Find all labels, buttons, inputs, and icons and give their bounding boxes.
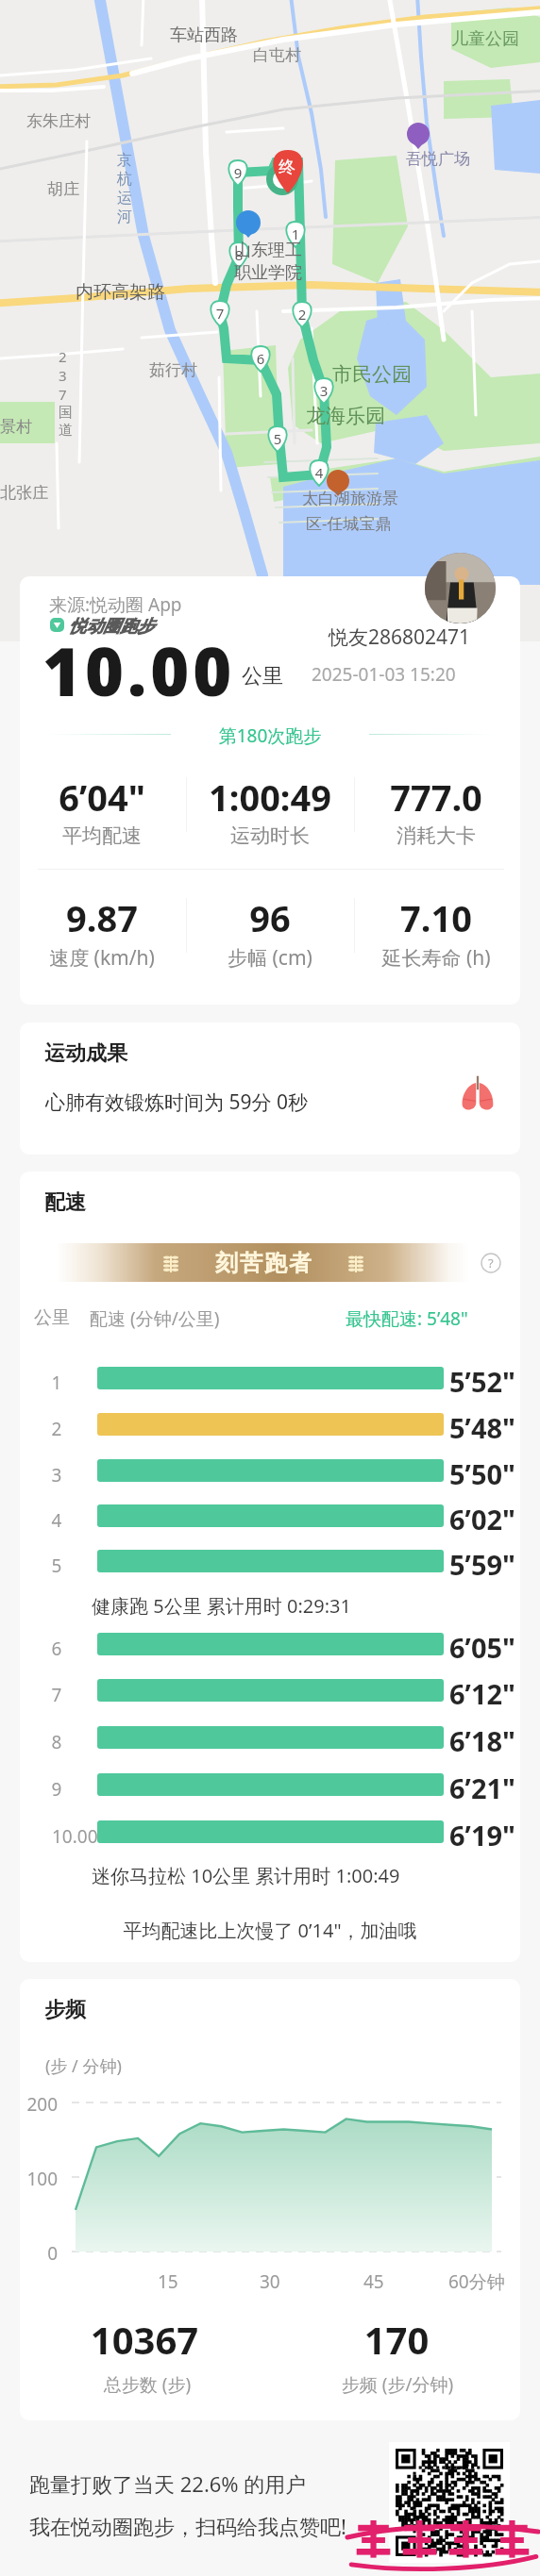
staticText: 公里 bbox=[34, 1306, 70, 1329]
staticText: 京 bbox=[117, 151, 132, 170]
staticText: 东朱庄村 bbox=[26, 111, 91, 131]
staticText: 运动时长 bbox=[166, 823, 374, 848]
staticText: 龙海乐园 bbox=[306, 404, 385, 428]
staticText: 步幅 (cm) bbox=[166, 944, 374, 972]
staticText: 6’18" bbox=[449, 1722, 515, 1759]
staticText: 777.0 bbox=[332, 773, 520, 822]
staticText: 河 bbox=[117, 208, 132, 226]
staticText: 太白湖旅游景 bbox=[302, 489, 398, 508]
staticText: 跑量打败了当天 22.6% 的用户 bbox=[29, 2469, 307, 2498]
staticText: (步 / 分钟) bbox=[45, 2054, 122, 2078]
staticText: 山东理工 bbox=[234, 240, 302, 261]
staticText: 吾悦广场 bbox=[406, 149, 470, 169]
staticText: 延长寿命 (h) bbox=[332, 944, 520, 972]
staticText: 45 bbox=[363, 2269, 384, 2294]
staticText: 7.10 bbox=[332, 893, 520, 942]
staticText: 终 bbox=[274, 157, 300, 178]
staticText: 运动成果 bbox=[44, 1040, 127, 1067]
staticText: 道 bbox=[59, 422, 73, 440]
staticText: 运 bbox=[117, 189, 132, 208]
staticText: 2025-01-03 15:20 bbox=[312, 662, 456, 687]
staticText: 杭 bbox=[117, 170, 132, 189]
staticText: 6’05" bbox=[449, 1629, 515, 1666]
staticText: 刻苦跑者 bbox=[214, 1249, 312, 1277]
staticText: 总步数 (步) bbox=[25, 2372, 270, 2397]
staticText: 5’50" bbox=[449, 1455, 515, 1492]
button[interactable]: User avatar bbox=[425, 553, 496, 623]
staticText: 3 bbox=[312, 381, 335, 400]
staticText: 6 bbox=[28, 1637, 85, 1661]
staticText: 2 bbox=[291, 305, 313, 324]
staticText: 消耗大卡 bbox=[332, 823, 520, 848]
staticText: 儿童公园 bbox=[451, 28, 519, 50]
staticText: 国 bbox=[59, 404, 73, 422]
staticText: 5 bbox=[28, 1554, 85, 1578]
staticText: 3 bbox=[59, 366, 67, 385]
staticText: 迷你马拉松 10公里 累计用时 1:00:49 bbox=[92, 1863, 400, 1888]
staticText: 职业学院 bbox=[234, 262, 302, 284]
staticText: 5’48" bbox=[449, 1409, 515, 1446]
staticText: 15 bbox=[158, 2269, 178, 2294]
staticText: 8 bbox=[28, 1730, 85, 1754]
staticText: 茹行村 bbox=[149, 360, 197, 380]
staticText: 6’04" bbox=[20, 773, 206, 822]
staticText: 6’21" bbox=[449, 1770, 515, 1806]
staticText: 区-任城宝鼎 bbox=[306, 512, 392, 534]
staticText: 9.87 bbox=[20, 893, 206, 942]
staticText: 10.00 bbox=[42, 625, 236, 715]
staticText: ? bbox=[488, 1255, 494, 1271]
staticText: 来源:悦动圈 App bbox=[49, 592, 182, 617]
staticText: 平均配速比上次慢了 0’14"，加油哦 bbox=[53, 1918, 487, 1943]
staticText: 公里 bbox=[242, 663, 283, 690]
staticText: 平均配速 bbox=[20, 823, 206, 848]
staticText: 60分钟 bbox=[448, 2269, 505, 2294]
staticText: 步频 bbox=[44, 1997, 86, 2023]
staticText: 5 bbox=[266, 429, 289, 448]
staticText: 3 bbox=[28, 1463, 85, 1487]
staticText: 9 bbox=[227, 163, 249, 182]
staticText: 步频 (步/分钟) bbox=[275, 2372, 520, 2397]
staticText: 6’02" bbox=[449, 1501, 515, 1537]
staticText: 7 bbox=[209, 304, 231, 323]
staticText: 7 bbox=[28, 1683, 85, 1707]
staticText: 配速 bbox=[44, 1189, 86, 1216]
staticText: 最快配速: 5’48" bbox=[346, 1306, 468, 1331]
staticText: 车站西路 bbox=[170, 25, 238, 46]
staticText: 市民公园 bbox=[332, 362, 412, 387]
staticText: 内环高架路 bbox=[76, 281, 165, 304]
staticText: 景村 bbox=[0, 417, 32, 437]
staticText: 1 bbox=[284, 224, 307, 243]
staticText: 1:00:49 bbox=[166, 773, 374, 822]
staticText: 0 bbox=[20, 2241, 58, 2266]
staticText: 10.00 bbox=[52, 1824, 98, 1849]
staticText: 胡庄 bbox=[47, 179, 79, 199]
staticText: 10367 bbox=[22, 2314, 267, 2365]
staticText: 9 bbox=[28, 1777, 85, 1802]
staticText: 4 bbox=[28, 1508, 85, 1533]
staticText: 5’52" bbox=[449, 1363, 515, 1400]
staticText: 6’19" bbox=[449, 1817, 515, 1853]
staticText: 白屯村 bbox=[253, 45, 301, 65]
staticText: 悦动圈跑步 bbox=[69, 616, 154, 638]
staticText: 第180次跑步 bbox=[166, 723, 374, 748]
staticText: 170 bbox=[274, 2314, 519, 2365]
staticText: 2 bbox=[28, 1417, 85, 1441]
staticText: 北张庄 bbox=[0, 483, 48, 503]
staticText: 96 bbox=[166, 893, 374, 942]
staticText: 100 bbox=[20, 2167, 58, 2191]
staticText: 1 bbox=[28, 1371, 85, 1395]
staticText: 悦友286802471 bbox=[329, 623, 471, 651]
staticText: 我在悦动圈跑步，扫码给我点赞吧! bbox=[29, 2512, 346, 2540]
staticText: 速度 (km/h) bbox=[20, 944, 206, 972]
staticText: 心肺有效锻炼时间为 59分 0秒 bbox=[45, 1089, 308, 1116]
staticText: 2 bbox=[59, 347, 67, 366]
staticText: 6 bbox=[249, 349, 272, 368]
staticText: 7 bbox=[59, 385, 67, 404]
staticText: 4 bbox=[308, 463, 330, 482]
staticText: 5’59" bbox=[449, 1546, 515, 1583]
button[interactable]: Help bbox=[481, 1253, 501, 1273]
staticText: 8 bbox=[228, 245, 250, 264]
staticText: 配速 (分钟/公里) bbox=[90, 1306, 220, 1331]
staticText: 健康跑 5公里 累计用时 0:29:31 bbox=[92, 1593, 351, 1619]
staticText: 30 bbox=[260, 2269, 280, 2294]
